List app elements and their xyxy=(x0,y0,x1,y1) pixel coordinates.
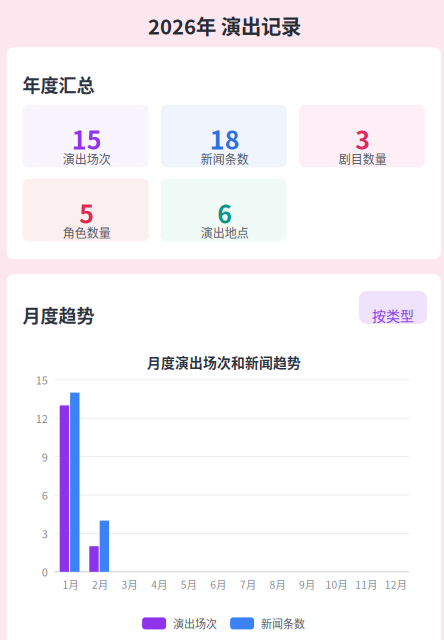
staticText: 月度演出场次和新闻趋势 xyxy=(147,352,301,372)
staticText: 9月 xyxy=(299,577,315,592)
staticText: 11月 xyxy=(355,577,377,592)
staticText: 3 xyxy=(42,525,48,541)
staticText: 4月 xyxy=(151,577,167,592)
staticText: 2026年 演出记录 xyxy=(148,11,301,40)
staticText: 3 xyxy=(355,120,370,157)
staticText: 3月 xyxy=(122,577,138,592)
staticText: 2月 xyxy=(92,577,108,592)
staticText: 7月 xyxy=(240,577,256,592)
staticText: 9 xyxy=(42,449,48,464)
staticText: 5月 xyxy=(181,577,197,592)
staticText: 5 xyxy=(79,194,94,231)
staticText: 按类型 xyxy=(372,305,414,325)
staticText: 月度趋势 xyxy=(22,302,94,328)
button[interactable]: 按类型 xyxy=(359,291,427,324)
staticText: 8月 xyxy=(269,577,285,592)
staticText: 6 xyxy=(217,194,232,231)
staticText: 1月 xyxy=(62,577,78,592)
staticText: 新闻条数 xyxy=(261,615,305,631)
staticText: 演出地点 xyxy=(201,224,249,241)
staticText: 6 xyxy=(42,487,48,503)
staticText: 12 xyxy=(36,410,48,426)
staticText: 12月 xyxy=(385,577,407,592)
staticText: 演出场次 xyxy=(173,615,217,631)
staticText: 年度汇总 xyxy=(22,71,94,98)
staticText: 剧目数量 xyxy=(339,150,387,167)
staticText: 0 xyxy=(42,564,48,580)
staticText: 6月 xyxy=(210,577,226,592)
staticText: 10月 xyxy=(326,577,348,592)
staticText: 18 xyxy=(210,120,240,157)
staticText: 角色数量 xyxy=(63,224,111,241)
staticText: 15 xyxy=(36,372,48,388)
staticText: 15 xyxy=(72,120,102,157)
staticText: 新闻条数 xyxy=(201,150,249,167)
staticText: 演出场次 xyxy=(63,150,111,167)
